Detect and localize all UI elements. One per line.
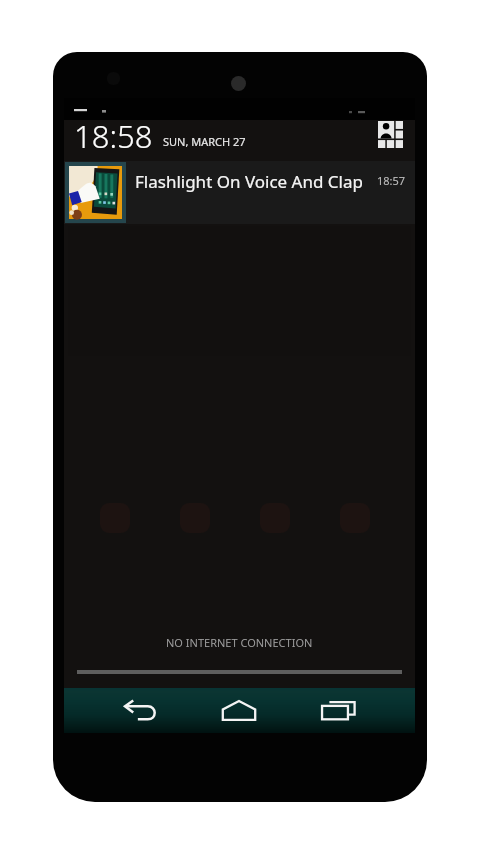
staticText: 18:58 — [74, 115, 153, 157]
button[interactable]: Home — [206, 688, 272, 733]
staticText: 18:57 — [377, 173, 406, 188]
button[interactable]: Back — [107, 688, 173, 733]
button[interactable]: Recents — [305, 688, 371, 733]
staticText: Flashlight On Voice And Clap — [135, 170, 363, 193]
staticText: SUN, MARCH 27 — [163, 134, 246, 149]
button[interactable]: Flashlight On Voice And Clap — [64, 161, 415, 224]
button[interactable]: Quick settings — [371, 115, 409, 153]
staticText: NO INTERNET CONNECTION — [166, 635, 313, 650]
